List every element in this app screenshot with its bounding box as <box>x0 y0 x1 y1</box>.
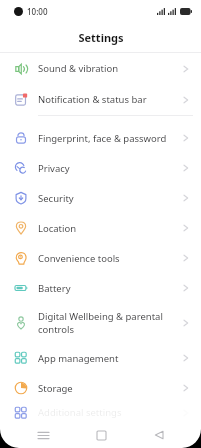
button[interactable]: Notification & status bar <box>0 84 201 115</box>
staticText: Privacy <box>38 162 169 175</box>
button[interactable]: Storage <box>0 373 201 403</box>
staticText: Location <box>38 222 169 235</box>
staticText: Additional settings <box>38 406 169 419</box>
staticText: Settings <box>78 30 124 45</box>
staticText: Notification & status bar <box>38 93 169 106</box>
button[interactable]: Home <box>86 422 116 448</box>
button[interactable]: Sound & vibration <box>0 53 201 84</box>
staticText: Battery <box>38 282 169 295</box>
button[interactable]: Digital Wellbeing & parental controls <box>0 303 201 343</box>
staticText: Sound & vibration <box>38 62 169 75</box>
button[interactable]: Battery <box>0 273 201 303</box>
staticText: Storage <box>38 382 169 395</box>
staticText: 10:00 <box>27 6 48 17</box>
staticText: Digital Wellbeing & parental controls <box>38 310 169 336</box>
button[interactable]: Back <box>143 422 173 448</box>
button[interactable]: Fingerprint, face & password <box>0 123 201 153</box>
button[interactable]: Security <box>0 183 201 213</box>
button[interactable]: Location <box>0 213 201 243</box>
staticText: Convenience tools <box>38 252 169 265</box>
button[interactable]: Privacy <box>0 153 201 183</box>
button[interactable]: App management <box>0 343 201 373</box>
button[interactable]: Additional settings <box>0 403 201 422</box>
staticText: Security <box>38 192 169 205</box>
button[interactable]: Recent apps <box>28 422 58 448</box>
staticText: App management <box>38 352 169 365</box>
staticText: Fingerprint, face & password <box>38 132 169 145</box>
button[interactable]: Convenience tools <box>0 243 201 273</box>
